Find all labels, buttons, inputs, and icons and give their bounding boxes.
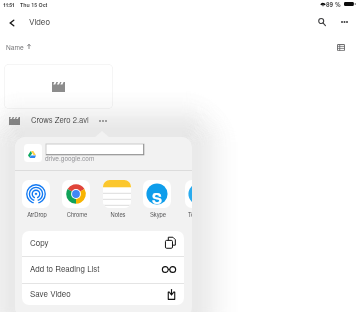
button[interactable]: Search [312,12,332,31]
button[interactable]: Change view [332,39,349,55]
staticText: Notes [98,210,138,218]
staticText: Copy [30,237,49,248]
staticText: Crows Zero 2.avi [31,114,89,125]
staticText: Name [6,42,24,51]
button[interactable]: Telegram [179,178,192,217]
staticText: Skype [138,210,178,218]
staticText: S [152,187,163,208]
staticText: AirDrop [17,210,57,218]
button[interactable]: Save Video [22,283,184,305]
staticText: Save Video [30,288,71,299]
button[interactable]: Copy [22,231,184,256]
button[interactable] [4,64,113,109]
button[interactable]: AirDrop [16,178,56,217]
staticText: 89 % [326,0,341,9]
staticText: Telegram [180,210,192,218]
button[interactable]: Back [3,13,21,32]
staticText: 11:51 [3,1,15,9]
button[interactable]: Name [6,40,31,52]
button[interactable]: Crows Zero 2.avi [3,111,113,127]
staticText: Chrome [57,210,97,218]
button[interactable]: Chrome [56,178,96,217]
staticText: Thu 15 Oct [20,1,48,9]
button[interactable]: Add to Reading List [22,256,184,283]
button[interactable]: More options [336,12,353,31]
staticText: Add to Reading List [30,263,100,274]
staticText: drive.google.com [45,154,95,163]
button[interactable]: S [137,178,177,217]
button[interactable]: Notes [97,178,137,217]
staticText: Video [29,16,50,28]
